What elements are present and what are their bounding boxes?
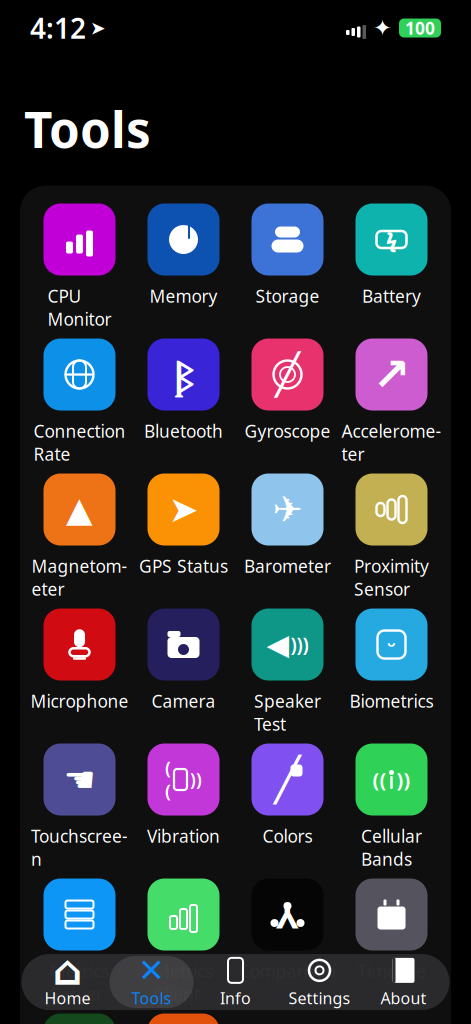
- button[interactable]: ↗: [339, 338, 443, 453]
- staticText: ✕: [138, 952, 165, 988]
- staticText: Touchscreen: [31, 824, 128, 870]
- staticText: About: [380, 987, 426, 1009]
- staticText: ▲: [66, 490, 93, 529]
- staticText: ✈: [272, 489, 302, 530]
- staticText: Connection Rate: [33, 419, 125, 465]
- staticText: Speaker Test: [254, 689, 321, 735]
- button[interactable]: ▲: [27, 473, 131, 588]
- staticText: Battery: [362, 284, 421, 307]
- staticText: ↗: [372, 349, 410, 400]
- staticText: ))): [290, 632, 308, 657]
- button[interactable]: Metrics Server: [27, 878, 131, 993]
- button[interactable]: ╱: [235, 743, 339, 858]
- staticText: Timeline: [357, 959, 426, 982]
- staticText: 4:12: [30, 9, 86, 47]
- staticText: ☚: [63, 759, 95, 800]
- staticText: Barometer: [244, 554, 331, 577]
- button[interactable]: ✕: [109, 956, 193, 1008]
- button[interactable]: ╱: [235, 338, 339, 453]
- staticText: Storage: [255, 284, 319, 307]
- button[interactable]: Memory: [131, 203, 235, 318]
- staticText: Proximity Sensor: [354, 554, 429, 600]
- staticText: ⅄: [276, 891, 299, 938]
- staticText: ╱: [275, 352, 299, 397]
- staticText: CPU Monitor: [47, 284, 111, 330]
- staticText: Biometrics: [349, 689, 433, 712]
- staticText: Magnetometer: [31, 554, 127, 600]
- button[interactable]: Microphone: [27, 608, 131, 723]
- staticText: ᛒ: [173, 349, 193, 400]
- staticText: Gyroscope: [244, 419, 330, 442]
- button[interactable]: ☚: [27, 743, 131, 858]
- staticText: 100: [405, 16, 435, 39]
- staticText: ✦: [373, 15, 392, 41]
- staticText: Camera: [151, 689, 215, 712]
- button[interactable]: ))): [131, 1013, 235, 1024]
- staticText: ◀: [266, 628, 289, 661]
- staticText: Settings: [288, 987, 350, 1009]
- button[interactable]: ⅄: [235, 878, 339, 993]
- staticText: Cellular Bands: [361, 824, 422, 870]
- staticText: Metrics Client: [154, 959, 213, 1005]
- staticText: Metrics Server: [50, 959, 109, 1005]
- staticText: Comparison: [238, 959, 336, 982]
- staticText: Bluetooth: [144, 419, 223, 442]
- staticText: ╱: [274, 755, 300, 804]
- staticText: Vibration: [147, 824, 220, 847]
- staticText: ⌂: [52, 947, 82, 994]
- staticText: (( )): [372, 766, 410, 793]
- staticText: ➤: [90, 17, 106, 39]
- staticText: ᵕ: [387, 630, 396, 659]
- staticText: Home: [44, 987, 90, 1009]
- button[interactable]: Camera: [131, 608, 235, 723]
- staticText: ((: [165, 756, 171, 802]
- staticText: ϟ: [386, 226, 397, 253]
- button[interactable]: Storage: [235, 203, 339, 318]
- button[interactable]: About: [361, 956, 445, 1008]
- button[interactable]: (((: [27, 1013, 131, 1024]
- button[interactable]: Info: [193, 956, 277, 1008]
- button[interactable]: Proximity Sensor: [339, 473, 443, 588]
- staticText: Memory: [149, 284, 217, 307]
- staticText: )): [190, 768, 202, 791]
- button[interactable]: (( )): [339, 743, 443, 858]
- staticText: Colors: [262, 824, 312, 847]
- button[interactable]: ᵕ: [339, 608, 443, 723]
- staticText: ➤: [168, 489, 198, 530]
- staticText: Microphone: [30, 689, 128, 712]
- staticText: Tools: [131, 987, 171, 1009]
- button[interactable]: ⌂: [25, 956, 109, 1008]
- staticText: GPS Status: [139, 554, 228, 577]
- button[interactable]: Connection Rate: [27, 338, 131, 453]
- staticText: Accelerometer: [341, 419, 441, 465]
- staticText: Info: [220, 987, 251, 1009]
- button[interactable]: Timeline: [339, 878, 443, 993]
- button[interactable]: ➤: [131, 473, 235, 588]
- button[interactable]: ◀: [235, 608, 339, 723]
- button[interactable]: ✈: [235, 473, 339, 588]
- button[interactable]: Settings: [277, 956, 361, 1008]
- button[interactable]: CPU Monitor: [27, 203, 131, 318]
- button[interactable]: ᛒ: [131, 338, 235, 453]
- staticText: Tools: [24, 96, 151, 161]
- button[interactable]: ϟ: [339, 203, 443, 318]
- button[interactable]: ((: [131, 743, 235, 858]
- button[interactable]: Metrics Client: [131, 878, 235, 993]
